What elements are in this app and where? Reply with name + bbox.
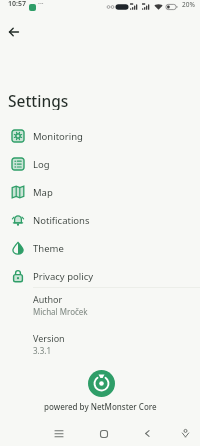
staticText: Notifications bbox=[33, 214, 90, 227]
button[interactable] bbox=[0, 329, 200, 358]
button[interactable] bbox=[49, 424, 68, 443]
button[interactable]: Log bbox=[0, 150, 200, 178]
staticText: Map bbox=[33, 186, 53, 199]
button[interactable]: Privacy policy bbox=[0, 262, 200, 290]
button[interactable]: Notifications bbox=[0, 206, 200, 234]
button[interactable] bbox=[176, 424, 195, 443]
staticText: 20% bbox=[182, 0, 195, 9]
button[interactable]: Monitoring bbox=[0, 122, 200, 150]
button[interactable] bbox=[88, 370, 115, 397]
staticText: Privacy policy bbox=[33, 270, 94, 283]
button[interactable] bbox=[5, 23, 23, 41]
button[interactable]: Map bbox=[0, 178, 200, 206]
staticText: Monitoring bbox=[33, 130, 83, 143]
staticText: Author bbox=[33, 293, 63, 305]
staticText: Log bbox=[33, 158, 50, 171]
button[interactable] bbox=[94, 424, 113, 443]
staticText: Settings bbox=[8, 90, 69, 110]
staticText: Theme bbox=[33, 242, 64, 255]
staticText: Version bbox=[33, 332, 65, 344]
staticText: 3.3.1 bbox=[33, 345, 52, 356]
staticText: powered by NetMonster Core bbox=[44, 401, 157, 412]
button[interactable] bbox=[0, 290, 200, 319]
staticText: 10:57 bbox=[8, 0, 26, 9]
staticText: Michal Mroček bbox=[33, 306, 88, 317]
button[interactable]: Theme bbox=[0, 234, 200, 262]
button[interactable] bbox=[138, 424, 157, 443]
staticText: ··· bbox=[38, 0, 44, 9]
